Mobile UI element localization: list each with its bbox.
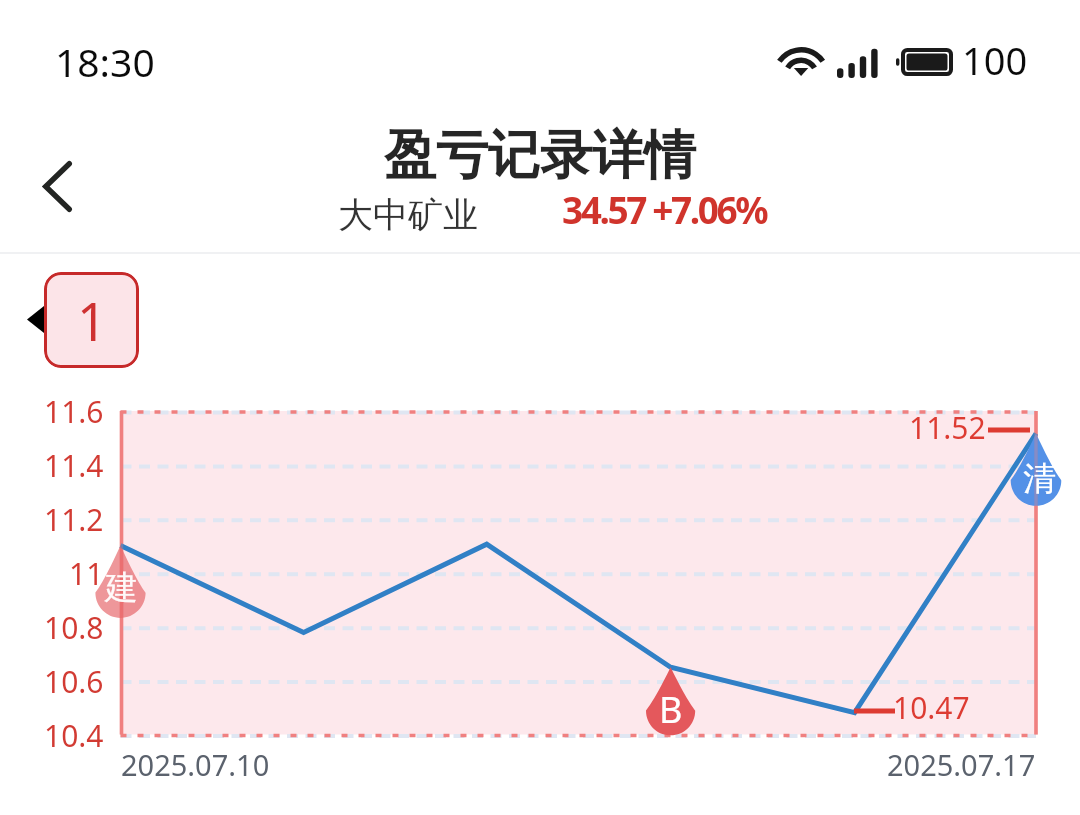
staticText: B (659, 685, 683, 734)
button[interactable]: Back (13, 141, 103, 231)
staticText: 建 (105, 567, 138, 609)
staticText: 11.6 (44, 391, 104, 432)
staticText: 2025.07.17 (887, 745, 1036, 784)
staticText: 10.4 (44, 715, 104, 756)
button[interactable]: 1 (44, 272, 139, 368)
staticText: 34.57 +7.06% (562, 184, 767, 234)
staticText: 10.6 (44, 661, 104, 702)
staticText: 2025.07.10 (121, 745, 270, 784)
staticText: 11.4 (44, 445, 104, 486)
staticText: 11.2 (44, 499, 104, 540)
staticText: 清 (1023, 458, 1056, 500)
staticText: 11 (69, 553, 104, 594)
staticText: 盈亏记录详情 (384, 123, 696, 189)
staticText: 1 (77, 285, 107, 356)
staticText: 11.52 (909, 407, 986, 448)
staticText: 10.8 (44, 607, 104, 648)
staticText: 18:30 (55, 35, 155, 88)
staticText: 100 (962, 34, 1028, 86)
staticText: 10.47 (893, 687, 970, 728)
staticText: 大中矿业 (338, 193, 478, 237)
